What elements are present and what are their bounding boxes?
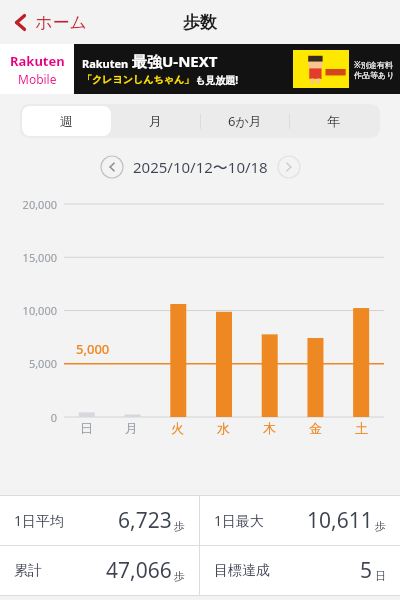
staticText: 20,000: [22, 197, 57, 212]
button[interactable]: 目標達成: [200, 546, 400, 595]
button[interactable]: 6か月: [200, 106, 289, 136]
button[interactable]: 1日平均: [0, 496, 199, 545]
staticText: 水: [217, 420, 230, 436]
button[interactable]: 前の期間: [100, 155, 124, 179]
staticText: 土: [355, 420, 368, 436]
staticText: Rakuten: [10, 52, 65, 70]
staticText: 歩: [174, 569, 185, 583]
staticText: 累計: [14, 562, 42, 580]
staticText: 47,066: [106, 556, 172, 585]
button[interactable]: 累計: [0, 546, 199, 595]
staticText: 歩: [174, 519, 185, 533]
staticText: 15,000: [22, 250, 57, 265]
button[interactable]: 月: [111, 106, 200, 136]
staticText: 歩: [375, 519, 386, 533]
staticText: 金: [309, 420, 322, 436]
staticText: 火: [171, 420, 184, 436]
staticText: 1日最大: [214, 511, 265, 530]
staticText: 5,000: [76, 340, 110, 358]
button[interactable]: 1日最大: [200, 496, 400, 545]
staticText: 日: [375, 569, 386, 583]
staticText: ※別途有料: [354, 59, 393, 70]
staticText: 0: [50, 410, 57, 425]
staticText: 5: [360, 556, 373, 585]
staticText: 1日平均: [14, 511, 65, 530]
staticText: 最強U-NEXT: [132, 51, 218, 71]
staticText: 月: [125, 420, 138, 436]
staticText: 歩数: [183, 12, 217, 33]
staticText: 2025/10/12〜10/18: [133, 157, 268, 177]
staticText: 10,000: [22, 303, 57, 318]
staticText: 6,723: [118, 506, 172, 535]
staticText: 木: [263, 420, 276, 436]
staticText: 年: [327, 113, 340, 129]
button[interactable]: 週: [22, 106, 111, 136]
staticText: 週: [60, 113, 73, 129]
staticText: 6か月: [228, 112, 262, 130]
button[interactable]: 年: [289, 106, 378, 136]
staticText: ホーム: [35, 12, 87, 33]
staticText: 月: [149, 113, 162, 129]
staticText: 作品等あり: [354, 70, 395, 80]
staticText: 目標達成: [214, 562, 270, 580]
button[interactable]: ホーム: [6, 6, 95, 39]
staticText: 「クレヨンしんちゃん」: [82, 73, 195, 86]
staticText: Mobile: [18, 71, 57, 87]
staticText: 10,611: [307, 506, 373, 535]
staticText: も見放題!: [195, 73, 239, 87]
button[interactable]: 次の期間: [277, 155, 301, 179]
staticText: 5,000: [28, 356, 57, 371]
staticText: Rakuten: [82, 56, 132, 71]
staticText: 日: [80, 420, 93, 436]
button[interactable]: Rakuten Mobile 広告: [0, 44, 400, 94]
